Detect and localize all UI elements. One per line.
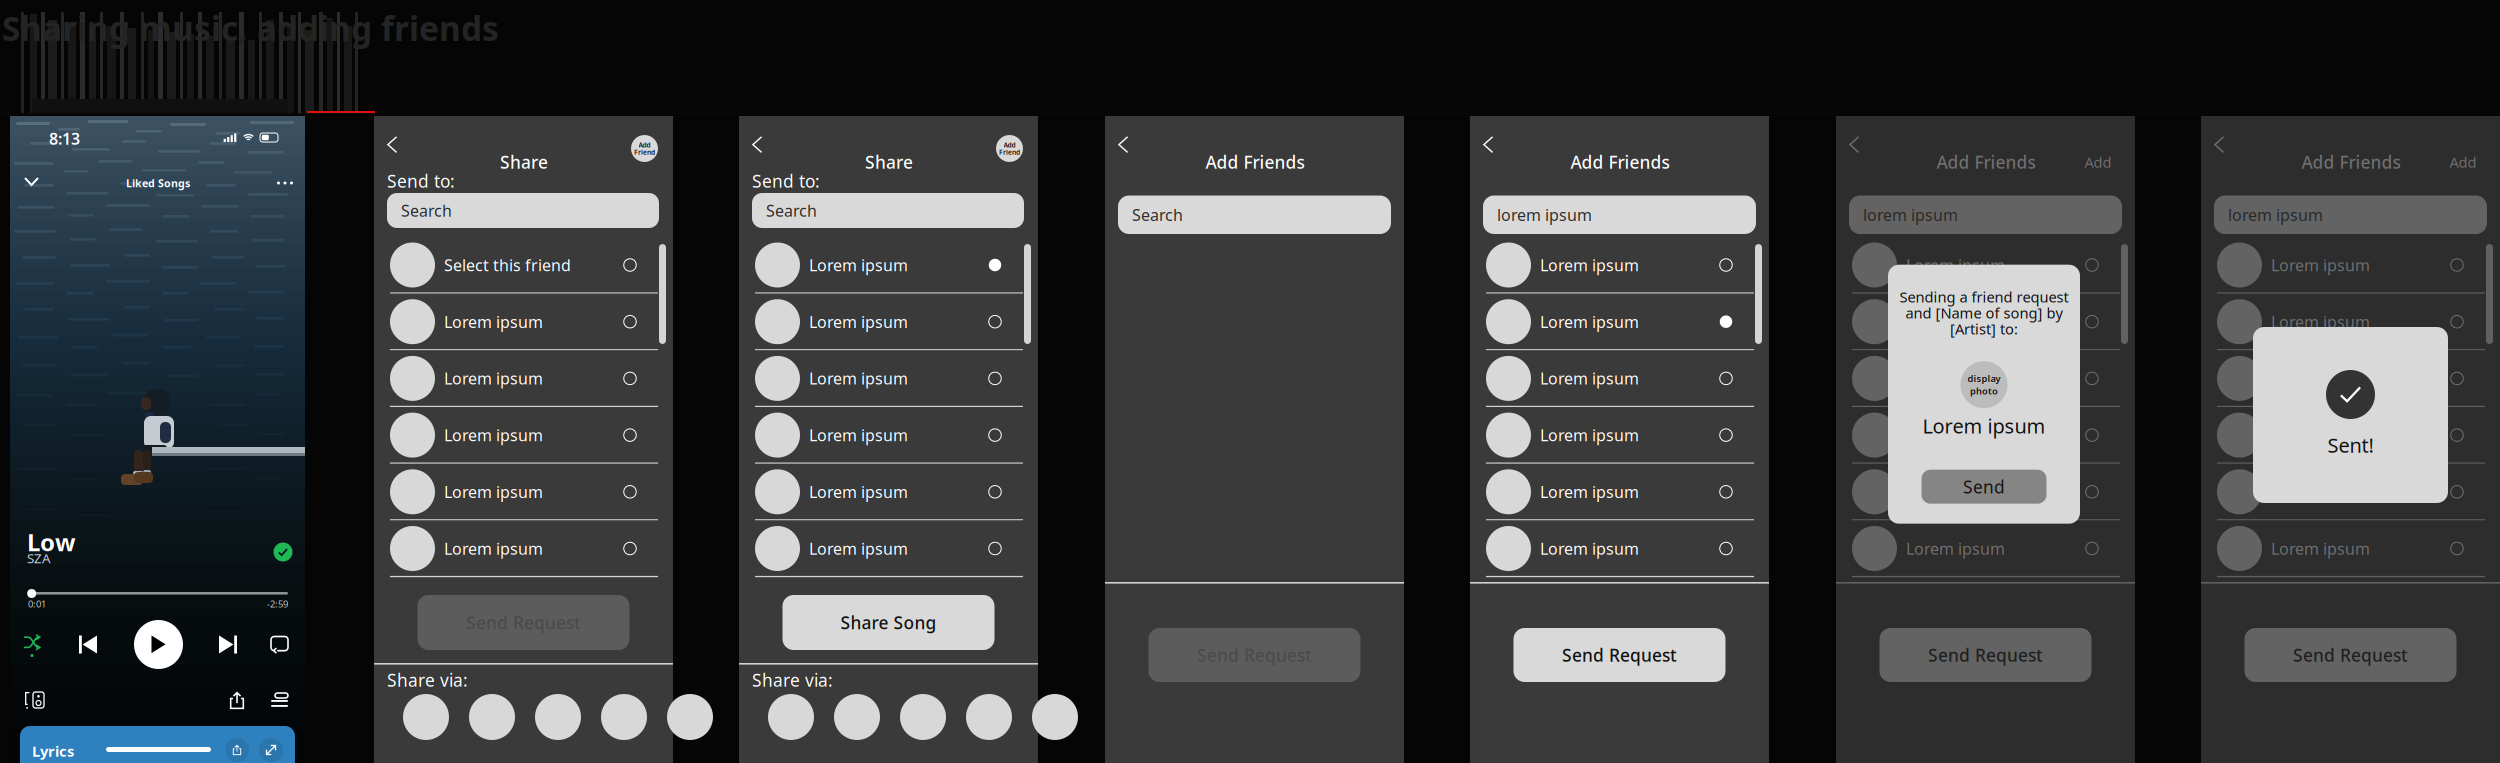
button[interactable]: Previous track <box>79 635 99 653</box>
button[interactable]: Share option 3 <box>535 694 581 740</box>
staticText: and [Name of song] by <box>1905 303 2062 322</box>
staticText: lorem ipsum <box>1497 204 1592 225</box>
button[interactable]: Back <box>1118 136 1128 153</box>
staticText: Sharing music, adding friends <box>2 6 499 50</box>
staticText: Lorem ipsum <box>1906 254 2005 276</box>
button[interactable]: Back <box>2214 136 2224 153</box>
button[interactable]: Share option 4 <box>966 694 1012 740</box>
button[interactable]: Lorem ipsum <box>1836 520 2135 577</box>
button[interactable]: Send Request <box>1879 628 2091 682</box>
staticText: Lorem ipsum <box>1540 481 1639 502</box>
staticText: Search <box>1132 204 1183 225</box>
button[interactable]: Shuffle <box>23 633 48 657</box>
staticText: Lorem ipsum <box>809 311 908 332</box>
button[interactable]: Lorem ipsum <box>1836 237 2135 294</box>
button[interactable]: Expand lyrics <box>259 738 283 762</box>
button[interactable]: Lorem ipsum <box>2201 464 2500 520</box>
staticText: Send Request <box>1562 643 1677 666</box>
button[interactable]: Send Request <box>1513 628 1725 682</box>
staticText: Send Request <box>2293 643 2408 666</box>
button[interactable]: Repeat <box>271 635 289 653</box>
button[interactable]: Lorem ipsum <box>2201 407 2500 464</box>
button[interactable]: Lorem ipsum <box>739 350 1038 407</box>
button[interactable]: Lorem ipsum <box>374 294 673 350</box>
button[interactable]: Lorem ipsum <box>374 407 673 464</box>
button[interactable]: Send Request <box>417 595 629 650</box>
staticText: Lorem ipsum <box>809 368 908 389</box>
button[interactable]: Share option 1 <box>403 694 449 740</box>
button[interactable]: Add <box>2084 152 2111 172</box>
button[interactable]: Share Song <box>782 595 994 650</box>
button[interactable]: Share option 4 <box>601 694 647 740</box>
staticText: Add <box>2449 152 2476 172</box>
button[interactable]: Lorem ipsum <box>2201 520 2500 577</box>
staticText: lorem ipsum <box>1863 204 1958 225</box>
staticText: Add <box>1003 140 1015 149</box>
staticText: Lorem ipsum <box>809 424 908 446</box>
button[interactable]: Lorem ipsum <box>374 520 673 577</box>
staticText: Lorem ipsum <box>1906 424 2005 446</box>
button[interactable]: Lorem ipsum <box>1836 407 2135 464</box>
button[interactable]: Lorem ipsum <box>739 294 1038 350</box>
button[interactable]: Back <box>752 136 762 153</box>
staticText: Lorem ipsum <box>2271 538 2370 559</box>
button[interactable]: Next track <box>217 635 237 653</box>
staticText: Share <box>500 150 548 173</box>
button[interactable]: Lorem ipsum <box>1836 350 2135 407</box>
button[interactable]: Add <box>996 135 1023 162</box>
staticText: Send <box>1963 475 2005 498</box>
button[interactable]: Add <box>631 135 658 162</box>
button[interactable]: Back <box>387 136 397 153</box>
button[interactable]: Share lyrics <box>225 738 249 762</box>
button[interactable]: Lorem ipsum <box>2201 237 2500 294</box>
staticText: Low <box>27 526 76 558</box>
button[interactable]: Lorem ipsum <box>739 464 1038 520</box>
staticText: Lorem ipsum <box>1906 481 2005 502</box>
button[interactable]: Lorem ipsum <box>1836 464 2135 520</box>
button[interactable]: Share option 1 <box>768 694 814 740</box>
staticText: Share via: <box>752 668 833 691</box>
button[interactable]: Select this friend <box>374 237 673 294</box>
button[interactable]: Lorem ipsum <box>1470 237 1769 294</box>
button[interactable]: Connect to a device <box>25 691 47 711</box>
button[interactable]: Lorem ipsum <box>1470 464 1769 520</box>
button[interactable]: Share option 3 <box>900 694 946 740</box>
button[interactable]: Play <box>134 620 183 669</box>
button[interactable]: Collapse now playing <box>24 177 39 186</box>
button[interactable]: Queue <box>271 693 289 708</box>
staticText: Lorem ipsum <box>1906 311 2005 332</box>
button[interactable]: Share option 2 <box>469 694 515 740</box>
button[interactable]: Send Request <box>1148 628 1360 682</box>
button[interactable]: Lorem ipsum <box>739 407 1038 464</box>
button[interactable]: Back <box>1483 136 1493 153</box>
button[interactable]: More options <box>272 176 298 190</box>
button[interactable]: Add <box>2449 152 2476 172</box>
staticText: Sent! <box>2327 432 2373 458</box>
button[interactable]: Lorem ipsum <box>1836 294 2135 350</box>
staticText: Send to: <box>752 169 820 192</box>
button[interactable]: Lorem ipsum <box>1470 294 1769 350</box>
button[interactable]: Lorem ipsum <box>739 520 1038 577</box>
button[interactable]: Send <box>1921 470 2046 504</box>
button[interactable]: Lorem ipsum <box>2201 350 2500 407</box>
button[interactable]: Share option 5 <box>1032 694 1078 740</box>
button[interactable]: Lorem ipsum <box>1470 350 1769 407</box>
staticText: Lorem ipsum <box>2271 424 2370 446</box>
button[interactable]: Back <box>1849 136 1859 153</box>
staticText: Send to: <box>387 169 455 192</box>
button[interactable]: Share option 5 <box>667 694 713 740</box>
button[interactable]: Lorem ipsum <box>374 350 673 407</box>
button[interactable]: Lorem ipsum <box>374 464 673 520</box>
button[interactable]: Share <box>230 692 244 709</box>
staticText: Lyrics <box>32 741 74 761</box>
staticText: Lorem ipsum <box>444 311 543 332</box>
button[interactable]: Lorem ipsum <box>2201 294 2500 350</box>
button[interactable]: Lorem ipsum <box>1470 520 1769 577</box>
button[interactable]: Send Request <box>2244 628 2456 682</box>
button[interactable]: Share option 2 <box>834 694 880 740</box>
button[interactable]: Lorem ipsum <box>739 237 1038 294</box>
staticText: Add Friends <box>2301 150 2400 173</box>
button[interactable]: Saved to your library <box>273 542 293 562</box>
button[interactable]: Lorem ipsum <box>1470 407 1769 464</box>
staticText: Lorem ipsum <box>2271 311 2370 332</box>
